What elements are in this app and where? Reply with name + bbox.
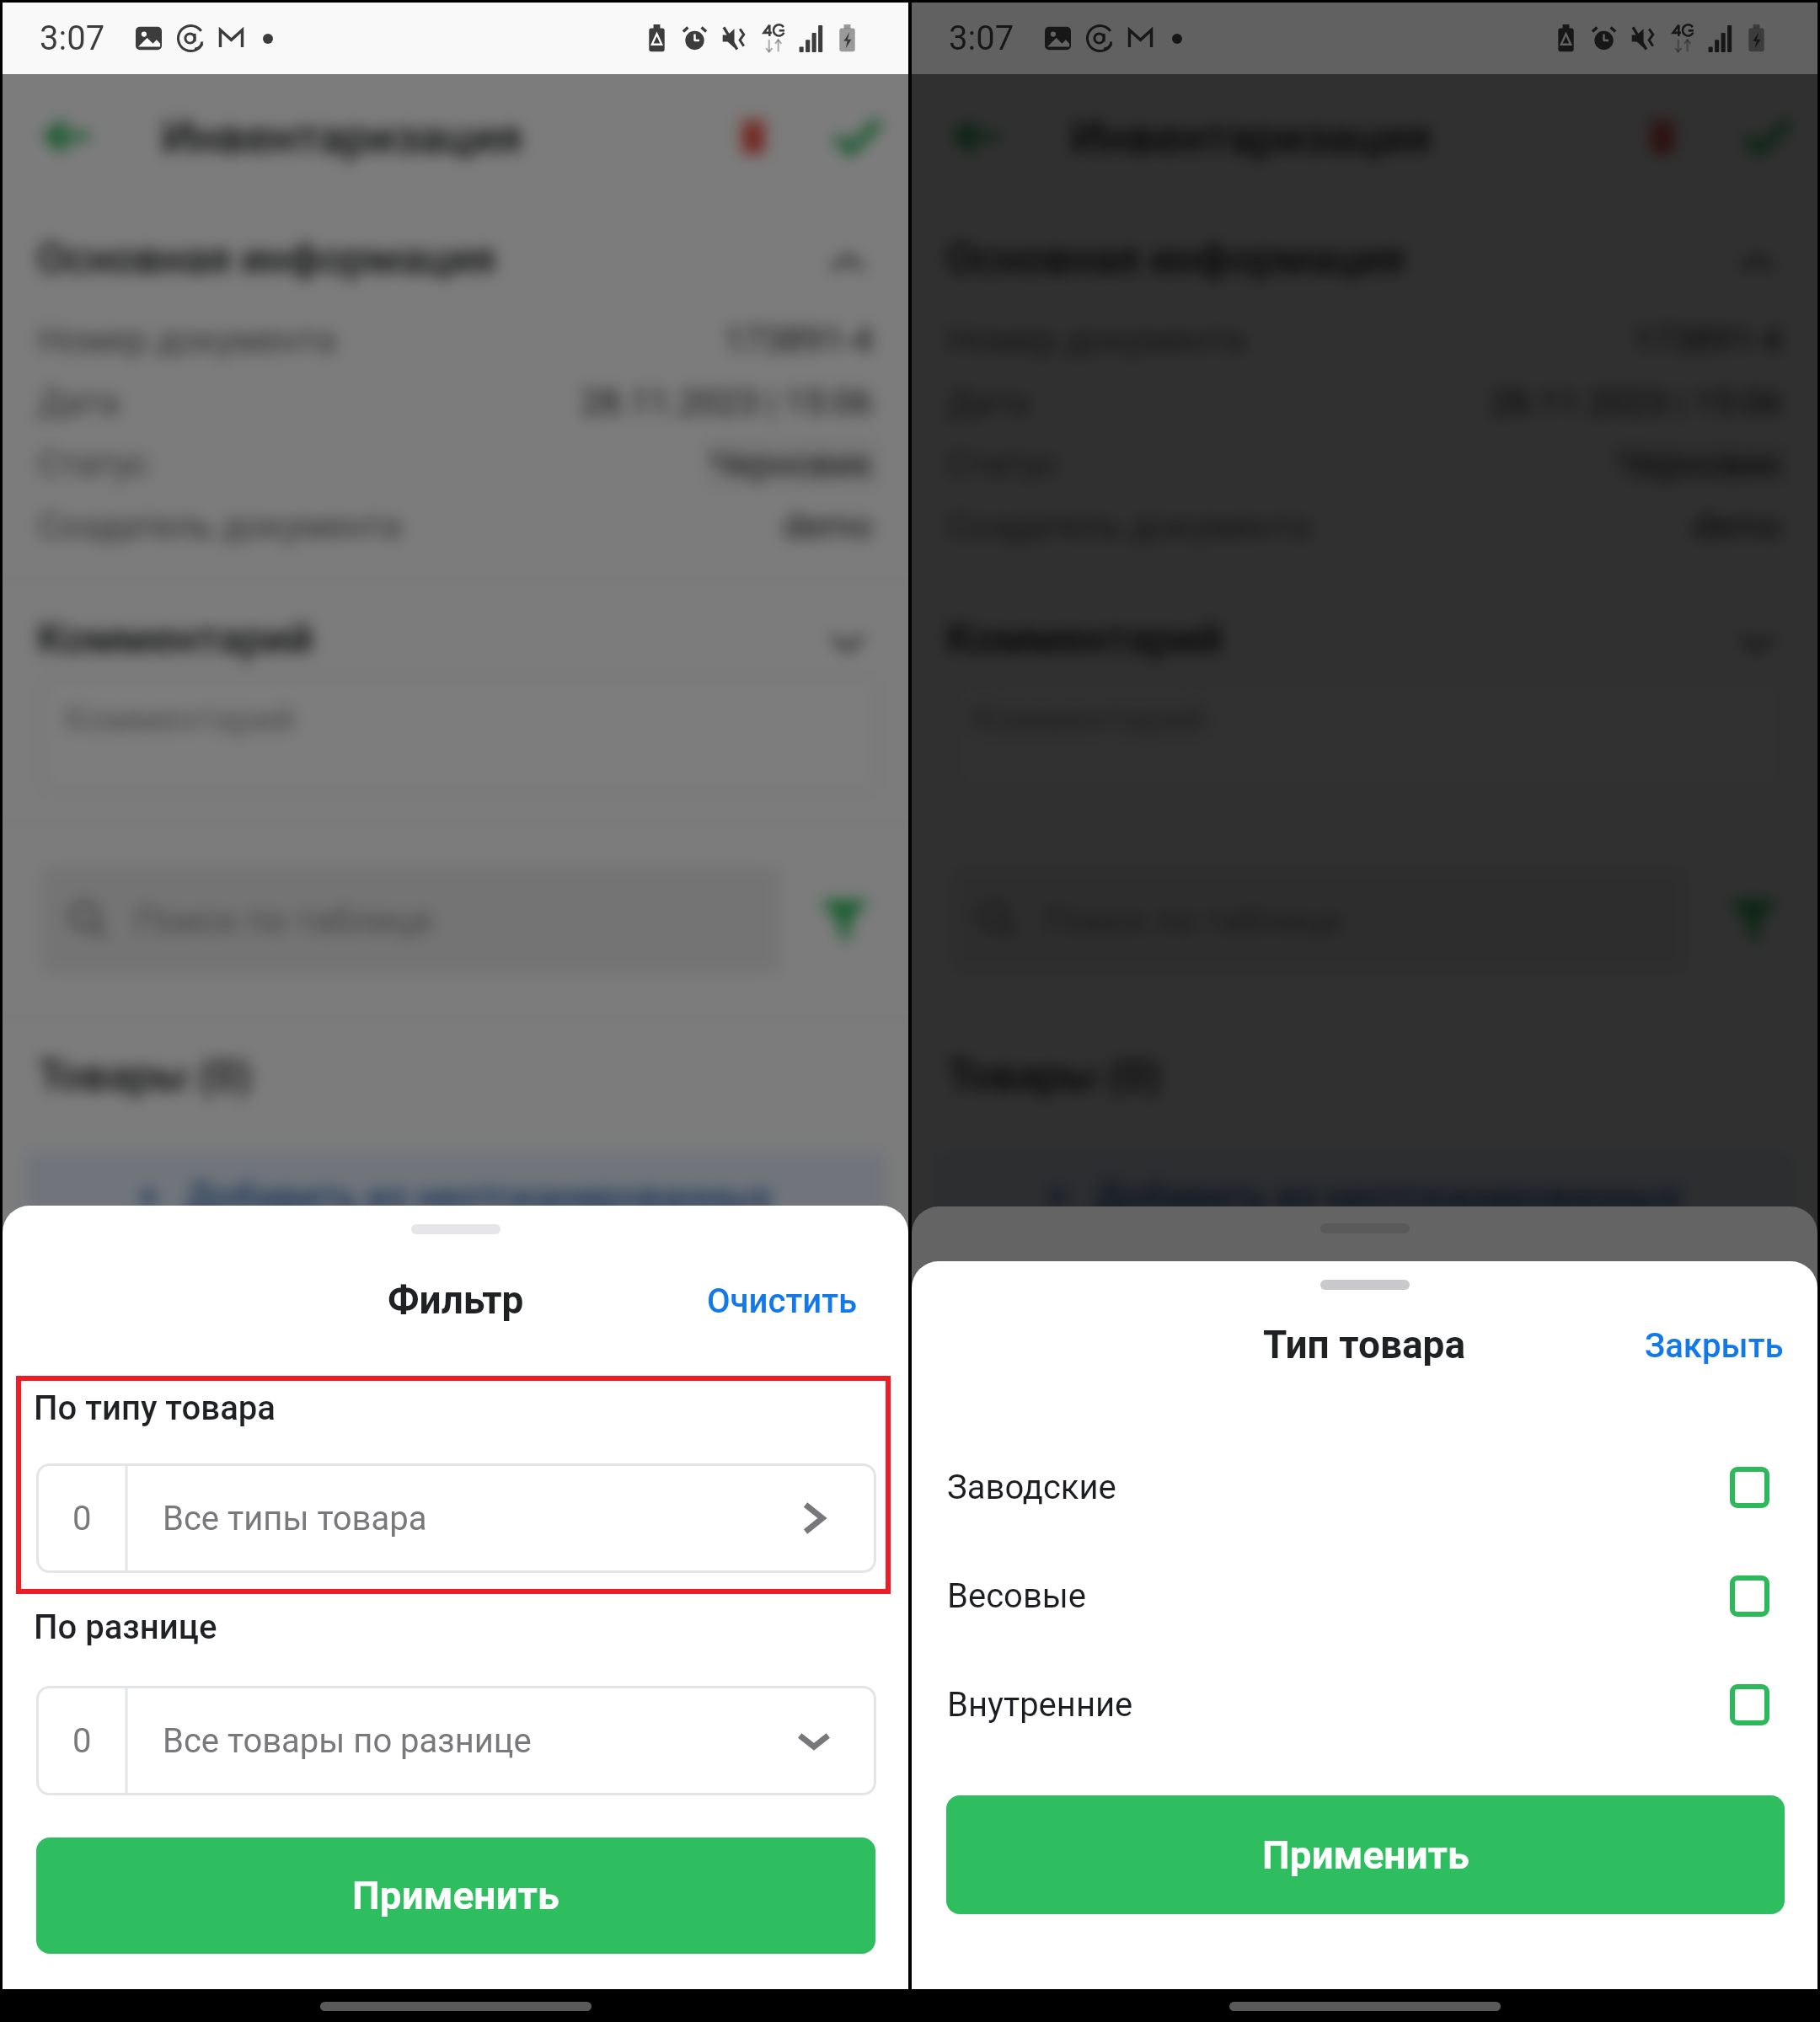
staticText: По разнице [34, 1607, 217, 1647]
staticText: 28.11.2023 | 15:06 [1490, 382, 1782, 423]
staticText: Инвентаризация [162, 110, 522, 163]
staticText: Все типы товара [163, 1499, 427, 1538]
staticText: 3:07 [949, 19, 1014, 58]
button[interactable]: Применить [946, 1795, 1785, 1914]
staticText: По типу товара [34, 1388, 276, 1428]
other: Search [69, 901, 108, 939]
staticText: Черновик [1619, 443, 1782, 484]
staticText: Все товары по разнице [163, 1721, 532, 1761]
staticText: Номер документа [38, 319, 336, 361]
button[interactable]: Save [832, 111, 883, 162]
staticText: Инвентаризация [1071, 110, 1432, 163]
staticText: Применить [1262, 1832, 1469, 1878]
staticText: + Добавить из неотсканированных [1047, 1175, 1682, 1219]
button[interactable]: Применить [36, 1837, 875, 1954]
button[interactable]: Закрыть [1616, 1309, 1817, 1383]
staticText: + Добавить из неотсканированных [138, 1175, 773, 1219]
button[interactable]: Back [45, 113, 92, 160]
button[interactable]: Внутренние [912, 1658, 1817, 1751]
staticText: Комментарий [946, 614, 1223, 664]
staticText: 0 [72, 1499, 92, 1538]
button[interactable]: + Добавить из неотсканированных [934, 1150, 1796, 1244]
button[interactable]: Save [1742, 111, 1792, 162]
staticText: Основная информация [37, 234, 496, 284]
staticText: 173891-4 [724, 319, 873, 361]
staticText: 3:07 [40, 19, 105, 58]
button[interactable]: Весовые [912, 1549, 1817, 1642]
staticText: Товары (0) [38, 1051, 252, 1101]
staticText: Очистить [707, 1281, 858, 1321]
button[interactable]: 0 [36, 1686, 876, 1795]
staticText: Применить [352, 1873, 559, 1918]
staticText: 173891-4 [1633, 319, 1782, 361]
staticText: demo [783, 505, 873, 547]
staticText: demo [1692, 505, 1782, 547]
staticText: 28.11.2023 | 15:06 [581, 382, 873, 423]
staticText: Тип товара [1263, 1322, 1466, 1367]
button[interactable]: Заводские [912, 1441, 1817, 1533]
staticText: Заводские [947, 1468, 1116, 1507]
staticText: Внутренние [947, 1685, 1133, 1725]
button[interactable]: Очистить [678, 1265, 908, 1338]
staticText: Весовые [947, 1576, 1087, 1616]
staticText: Фильтр [388, 1277, 524, 1323]
button[interactable]: Filter [1727, 894, 1780, 946]
staticText: Создатель документа [38, 505, 402, 547]
staticText: Основная информация [946, 234, 1405, 284]
staticText: Поиск по таблице [135, 900, 433, 941]
button[interactable]: 0 [36, 1463, 876, 1573]
staticText: Комментарий [37, 614, 313, 664]
staticText: Статус [38, 443, 149, 484]
staticText: Товары (0) [947, 1051, 1161, 1101]
button[interactable]: Back [954, 113, 1001, 160]
staticText: Черновик [709, 443, 873, 484]
staticText: Комментарий [64, 698, 295, 740]
staticText: Закрыть [1645, 1326, 1784, 1366]
button[interactable]: + Добавить из неотсканированных [24, 1150, 886, 1244]
staticText: 0 [72, 1721, 92, 1761]
staticText: Дата [38, 382, 120, 423]
button[interactable]: Filter [818, 894, 870, 946]
button[interactable]: Delete [1646, 116, 1679, 157]
button[interactable]: Delete [736, 116, 770, 157]
